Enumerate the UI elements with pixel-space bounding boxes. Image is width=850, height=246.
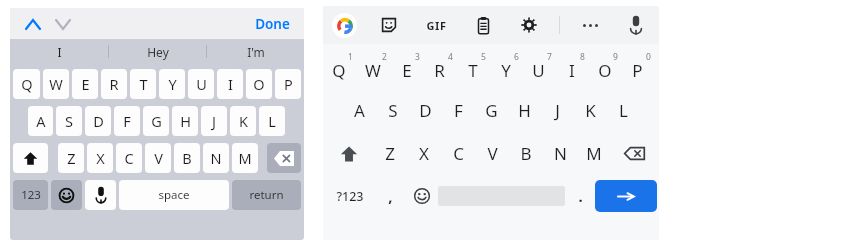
button[interactable]: U [188, 69, 214, 99]
button[interactable]: I'm [207, 39, 304, 64]
button[interactable]: ?123 [325, 175, 375, 217]
staticText: G [485, 99, 498, 122]
button[interactable]: X [407, 132, 441, 175]
button[interactable]: K [230, 106, 256, 136]
button[interactable]: Voice input [623, 12, 649, 38]
staticText: V [154, 148, 163, 168]
button[interactable]: Shift [13, 143, 48, 173]
staticText: S [388, 99, 398, 122]
staticText: 4 [448, 51, 453, 63]
button[interactable]: E [72, 69, 98, 99]
button[interactable]: M [232, 143, 258, 173]
button[interactable]: return [232, 180, 301, 210]
staticText: ?123 [336, 188, 364, 205]
button[interactable]: S [376, 89, 409, 132]
button[interactable]: W [43, 69, 69, 99]
button[interactable]: Backspace [611, 132, 657, 175]
button[interactable]: C [441, 132, 475, 175]
button[interactable]: L [259, 106, 285, 136]
button[interactable]: Y [159, 69, 185, 99]
button[interactable]: K [574, 89, 607, 132]
staticText: Q [21, 74, 33, 94]
button[interactable]: V [145, 143, 171, 173]
button[interactable]: P [624, 47, 657, 89]
button[interactable]: F [114, 106, 140, 136]
button[interactable]: Emoji [405, 175, 438, 217]
button[interactable]: 123 [13, 180, 48, 210]
button[interactable]: Stickers [376, 12, 402, 38]
button[interactable]: A [343, 89, 376, 132]
button[interactable]: S [56, 106, 82, 136]
button[interactable]: O [591, 47, 624, 89]
staticText: R [109, 74, 119, 94]
button[interactable]: Clipboard [470, 12, 496, 38]
button[interactable]: H [508, 89, 541, 132]
staticText: F [454, 99, 463, 122]
button[interactable]: I [10, 39, 108, 64]
button[interactable]: O [246, 69, 272, 99]
button[interactable]: W [359, 47, 393, 89]
button[interactable]: V [475, 132, 509, 175]
button[interactable]: N [203, 143, 229, 173]
button[interactable]: N [543, 132, 577, 175]
button[interactable]: Backspace [267, 143, 301, 173]
button[interactable]: GIF [422, 11, 450, 39]
button[interactable]: More options [577, 12, 603, 38]
button[interactable]: Voice input [85, 180, 116, 210]
staticText: G [151, 111, 162, 131]
staticText: O [598, 59, 612, 82]
button[interactable]: B [509, 132, 543, 175]
staticText: 5 [481, 51, 486, 63]
button[interactable]: T [459, 47, 492, 89]
button[interactable]: , [375, 175, 405, 217]
staticText: 3 [415, 51, 420, 63]
button[interactable]: Y [492, 47, 525, 89]
button[interactable]: I [558, 47, 591, 89]
button[interactable]: P [275, 69, 301, 99]
staticText: O [253, 74, 265, 94]
button[interactable]: U [525, 47, 558, 89]
staticText: I [57, 44, 62, 60]
button[interactable]: Shift [325, 132, 372, 175]
button[interactable]: Done [251, 11, 294, 37]
button[interactable]: T [130, 69, 156, 99]
button[interactable]: Z [372, 132, 407, 175]
button[interactable]: D [85, 106, 111, 136]
staticText: I'm [247, 44, 265, 60]
button[interactable]: I [217, 69, 243, 99]
button[interactable]: Q [325, 47, 359, 89]
button[interactable]: Z [58, 143, 84, 173]
button[interactable]: Hey [109, 39, 206, 64]
button[interactable]: G [475, 89, 508, 132]
button[interactable]: J [201, 106, 227, 136]
button[interactable]: Previous field [22, 13, 44, 35]
button[interactable]: F [442, 89, 475, 132]
button[interactable]: Next field [52, 13, 74, 35]
button[interactable]: Settings [516, 12, 542, 38]
staticText: 6 [514, 51, 519, 63]
staticText: B [182, 148, 192, 168]
button[interactable]: E [393, 47, 426, 89]
button[interactable]: R [101, 69, 127, 99]
button[interactable]: G [143, 106, 169, 136]
button[interactable]: space [119, 180, 229, 210]
button[interactable]: Q [13, 69, 40, 99]
button[interactable]: L [607, 89, 640, 132]
button[interactable]: C [116, 143, 142, 173]
button[interactable]: H [172, 106, 198, 136]
button[interactable]: M [577, 132, 611, 175]
button[interactable]: D [409, 89, 442, 132]
button[interactable]: R [426, 47, 459, 89]
staticText: M [238, 148, 252, 168]
button[interactable]: Google search [332, 13, 357, 38]
button[interactable]: J [541, 89, 574, 132]
staticText: E [81, 74, 90, 94]
button[interactable]: B [174, 143, 200, 173]
button[interactable]: X [87, 143, 113, 173]
button[interactable]: . [565, 175, 595, 217]
button[interactable]: A [28, 106, 53, 136]
button[interactable]: Emoji [51, 180, 82, 210]
button[interactable]: Enter [595, 180, 657, 212]
staticText: N [554, 142, 567, 165]
